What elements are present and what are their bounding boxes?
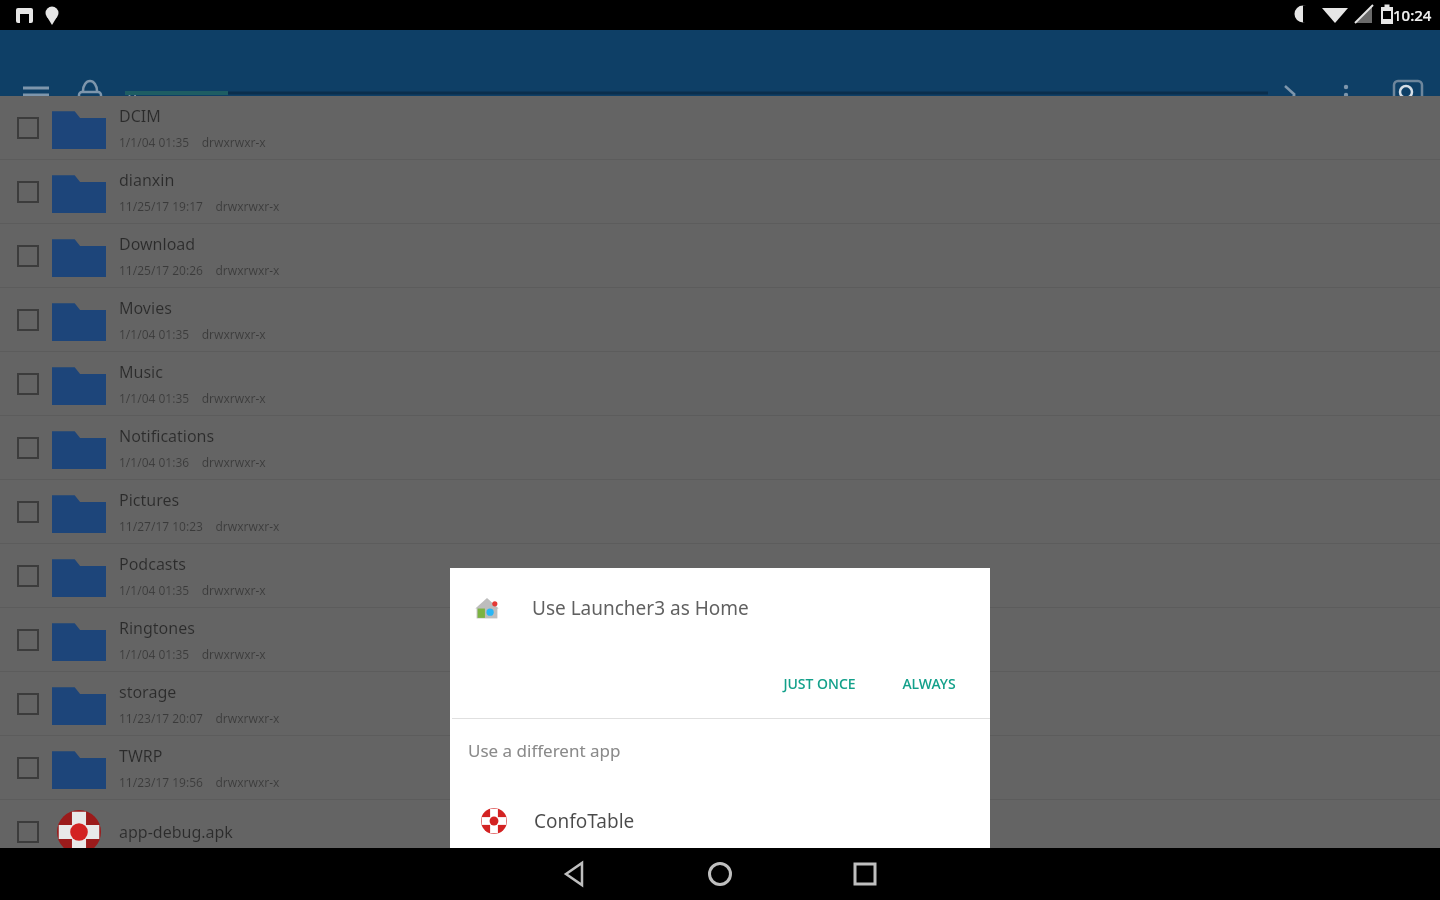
button[interactable]: Select Notifications xyxy=(17,437,39,459)
button[interactable]: Select Download xyxy=(17,245,39,267)
button[interactable]: Select TWRP xyxy=(0,736,1440,800)
staticText: 1/1/04 01:36 drwxrwxr-x xyxy=(119,454,266,470)
staticText: ALWAYS xyxy=(902,674,956,693)
button[interactable]: Select Pictures xyxy=(17,501,39,523)
button[interactable]: Search xyxy=(1384,71,1432,119)
button[interactable]: Select dianxin xyxy=(0,160,1440,224)
button[interactable]: Select Podcasts xyxy=(0,544,1440,608)
button[interactable]: Lock xyxy=(66,71,114,119)
staticText: 11/23/17 19:56 drwxrwxr-x xyxy=(119,774,280,790)
button[interactable]: Select Movies xyxy=(0,288,1440,352)
staticText: 11/25/17 20:26 drwxrwxr-x xyxy=(119,262,280,278)
button[interactable]: ALWAYS xyxy=(890,664,968,703)
button[interactable]: Home xyxy=(696,848,744,900)
button[interactable]: ConfoTable xyxy=(450,794,990,848)
button[interactable]: Select storage xyxy=(17,693,39,715)
staticText: Pictures xyxy=(119,489,180,511)
staticText: Use Launcher3 as Home xyxy=(532,595,749,621)
staticText: dianxin xyxy=(119,169,175,191)
staticText: TWRP xyxy=(119,745,163,767)
button[interactable]: Select Notifications xyxy=(0,416,1440,480)
staticText: Use a different app xyxy=(468,739,621,762)
button[interactable]: JUST ONCE xyxy=(771,664,868,703)
button[interactable]: Select Movies xyxy=(17,309,39,331)
staticText: 11/23/17 20:07 drwxrwxr-x xyxy=(119,710,280,726)
button[interactable]: Select Ringtones xyxy=(17,629,39,651)
button[interactable]: Select DCIM xyxy=(17,117,39,139)
staticText: 11/25/17 19:17 drwxrwxr-x xyxy=(119,198,280,214)
button[interactable]: Select storage xyxy=(0,672,1440,736)
staticText: Music xyxy=(119,361,163,383)
button[interactable]: Select DCIM xyxy=(0,96,1440,160)
button[interactable]: Recent apps xyxy=(841,848,889,900)
button[interactable]: Select Music xyxy=(17,373,39,395)
staticText: app-debug.apk xyxy=(119,821,233,843)
staticText: 1/1/04 01:35 drwxrwxr-x xyxy=(119,646,266,662)
staticText: Ringtones xyxy=(119,617,195,639)
staticText: 11/27/17 10:23 drwxrwxr-x xyxy=(119,518,280,534)
staticText: Movies xyxy=(119,297,172,319)
staticText: 1/1/04 01:35 drwxrwxr-x xyxy=(119,134,266,150)
staticText: 1/1/04 01:35 drwxrwxr-x xyxy=(119,390,266,406)
staticText: Podcasts xyxy=(119,553,186,575)
staticText: DCIM xyxy=(119,105,161,127)
button[interactable]: Select Pictures xyxy=(0,480,1440,544)
button[interactable]: Use Launcher3 as Home xyxy=(450,568,990,648)
button[interactable]: Select Download xyxy=(0,224,1440,288)
button[interactable]: Select app-debug.apk xyxy=(0,800,1440,864)
staticText: 1/1/04 01:35 drwxrwxr-x xyxy=(119,582,266,598)
button[interactable]: Select Music xyxy=(0,352,1440,416)
button[interactable]: Select app-debug.apk xyxy=(17,821,39,843)
staticText: 10:24 xyxy=(1393,5,1432,25)
button[interactable]: Forward xyxy=(1266,71,1314,119)
button[interactable]: Menu xyxy=(12,71,60,119)
staticText: ConfoTable xyxy=(534,808,635,834)
staticText: Download xyxy=(119,233,196,255)
staticText: storage xyxy=(119,681,177,703)
staticText: 0 xyxy=(128,85,137,105)
staticText: Notifications xyxy=(119,425,215,447)
button[interactable]: Select Ringtones xyxy=(0,608,1440,672)
staticText: JUST ONCE xyxy=(783,674,856,693)
button[interactable]: Back xyxy=(551,848,599,900)
staticText: 1/1/04 01:35 drwxrwxr-x xyxy=(119,326,266,342)
button[interactable]: More options xyxy=(1322,71,1370,119)
button[interactable]: Select Podcasts xyxy=(17,565,39,587)
button[interactable]: Select TWRP xyxy=(17,757,39,779)
button[interactable]: Select dianxin xyxy=(17,181,39,203)
